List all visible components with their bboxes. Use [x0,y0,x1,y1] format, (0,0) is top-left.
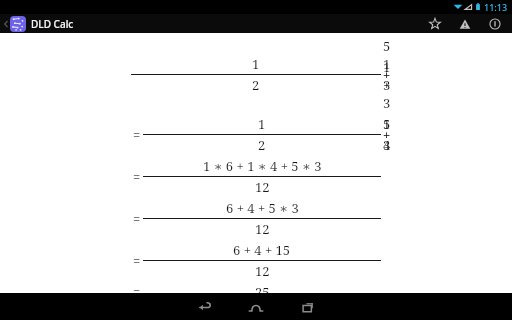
button[interactable]: Favorite [420,14,450,33]
staticText: = [133,210,141,228]
staticText: 12 [255,262,270,280]
staticText: 12 [255,220,270,238]
staticText: = [133,252,141,270]
staticText: 12 [255,178,270,196]
staticText: 1 ∗ 6 + 1 ∗ 4 + 5 ∗ 3 [203,157,322,175]
button[interactable]: App icon, navigate up [10,16,26,32]
staticText: 11:13 [484,1,508,13]
staticText: 2 [258,136,266,154]
staticText: = [133,126,141,144]
button[interactable]: Info [480,14,510,33]
staticText: 1 [258,115,266,133]
staticText: DLD Calc [31,17,74,31]
button[interactable]: Recent apps [282,293,334,320]
staticText: 6 + 4 + 5 ∗ 3 [226,199,299,217]
staticText: 2 [252,76,260,94]
staticText: 25 [255,283,270,293]
button[interactable]: Warning [450,14,480,33]
staticText: = [133,168,141,186]
staticText: 1 [252,55,260,73]
button[interactable]: Back [178,293,230,320]
staticText: = [133,283,141,293]
button[interactable]: Home [230,293,282,320]
staticText: 6 + 4 + 15 [233,241,291,259]
